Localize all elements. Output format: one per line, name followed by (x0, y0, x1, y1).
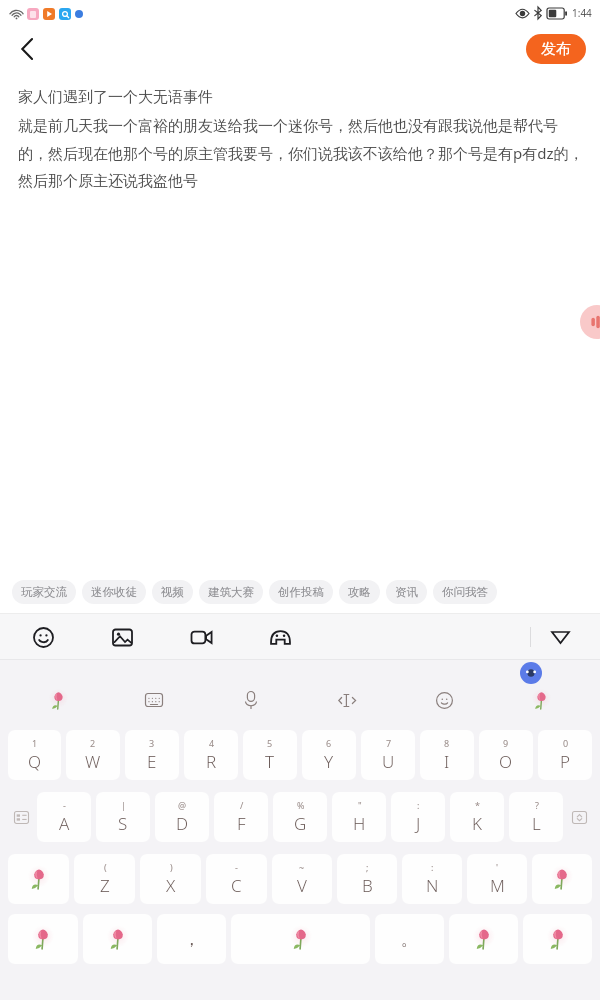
button[interactable]: 资讯 (386, 580, 427, 604)
button[interactable]: 玩家交流 (12, 580, 76, 604)
staticText: Q (28, 750, 42, 773)
button[interactable]: ' (467, 854, 527, 904)
staticText: U (382, 750, 395, 773)
button[interactable]: 。 (375, 914, 444, 964)
staticText: 攻略 (348, 585, 371, 599)
staticText: 你问我答 (442, 585, 488, 599)
staticText: I (444, 750, 450, 773)
staticText: 2 (90, 737, 96, 749)
button[interactable]: : (402, 854, 462, 904)
button[interactable]: Voice input (202, 680, 299, 720)
button[interactable]: 建筑大赛 (199, 580, 263, 604)
staticText: ) (170, 861, 173, 873)
staticText: F (237, 812, 246, 835)
staticText: ' (496, 861, 499, 873)
button[interactable]: 2 (66, 730, 120, 780)
button[interactable]: 5 (243, 730, 297, 780)
staticText: P (560, 750, 571, 773)
button[interactable]: 9 (479, 730, 533, 780)
staticText: ? (535, 799, 539, 811)
button[interactable]: Sticker key (231, 914, 370, 964)
button[interactable]: ( (74, 854, 135, 904)
staticText: X (166, 874, 176, 897)
staticText: O (499, 750, 513, 773)
staticText: 6 (326, 737, 332, 749)
staticText: E (147, 750, 157, 773)
button[interactable]: Sticker (493, 680, 590, 720)
staticText: % (297, 799, 305, 811)
staticText: ( (104, 861, 107, 873)
button[interactable]: Sticker key (8, 854, 69, 904)
button[interactable]: Back (6, 28, 48, 70)
staticText: - (235, 861, 238, 873)
staticText: 视频 (161, 585, 184, 599)
button[interactable]: Sticker (10, 680, 106, 720)
button[interactable]: Sticker key (532, 854, 592, 904)
button[interactable]: 你问我答 (433, 580, 497, 604)
button[interactable]: ; (337, 854, 397, 904)
staticText: G (294, 812, 307, 835)
button[interactable]: Collapse keyboard (540, 617, 580, 657)
button[interactable]: Video (184, 620, 218, 654)
button[interactable]: " (332, 792, 386, 842)
button[interactable]: 迷你收徒 (82, 580, 146, 604)
button[interactable]: 攻略 (339, 580, 380, 604)
button[interactable]: * (450, 792, 504, 842)
button[interactable]: 6 (302, 730, 356, 780)
button[interactable]: Sticker key (83, 914, 152, 964)
staticText: 3 (149, 737, 155, 749)
staticText: 1 (32, 737, 38, 749)
staticText: 8 (444, 737, 450, 749)
button[interactable]: Game (263, 620, 297, 654)
button[interactable]: Floating shortcut (580, 305, 600, 339)
button[interactable]: 1 (8, 730, 61, 780)
button[interactable]: | (96, 792, 150, 842)
button[interactable]: Sticker key (449, 914, 518, 964)
button[interactable]: ， (157, 914, 226, 964)
staticText: - (63, 799, 66, 811)
button[interactable]: @ (155, 792, 209, 842)
button[interactable]: Shift (568, 806, 590, 828)
button[interactable]: Image (105, 620, 139, 654)
button[interactable]: 创作投稿 (269, 580, 333, 604)
button[interactable]: - (206, 854, 267, 904)
button[interactable]: 8 (420, 730, 474, 780)
staticText: K (472, 812, 482, 835)
staticText: 7 (386, 737, 392, 749)
staticText: 9 (503, 737, 509, 749)
button[interactable]: ) (140, 854, 201, 904)
button[interactable]: - (37, 792, 91, 842)
button[interactable]: 视频 (152, 580, 193, 604)
staticText: 1:44 (572, 6, 592, 20)
button[interactable]: Sticker key (523, 914, 592, 964)
button[interactable]: ? (509, 792, 563, 842)
button[interactable]: Keyboard layout (106, 680, 202, 720)
staticText: V (297, 874, 307, 897)
button[interactable]: Symbols (10, 806, 32, 828)
staticText: 家人们遇到了一个大无语事件 (18, 88, 213, 107)
button[interactable]: Sticker key (8, 914, 78, 964)
staticText: W (85, 750, 101, 773)
button[interactable]: / (214, 792, 268, 842)
button[interactable]: Emoji (26, 620, 60, 654)
button[interactable]: : (391, 792, 445, 842)
staticText: 5 (267, 737, 273, 749)
button[interactable]: 发布 (526, 34, 586, 64)
staticText: 资讯 (395, 585, 418, 599)
staticText: C (231, 874, 242, 897)
staticText: J (416, 812, 421, 835)
button[interactable]: Avatar (520, 662, 542, 684)
button[interactable]: % (273, 792, 327, 842)
staticText: ; (366, 861, 369, 873)
staticText: R (206, 750, 217, 773)
button[interactable]: Move cursor (299, 680, 396, 720)
button[interactable]: 0 (538, 730, 592, 780)
button[interactable]: 7 (361, 730, 415, 780)
button[interactable]: Emoji (396, 680, 493, 720)
button[interactable]: 4 (184, 730, 238, 780)
staticText: 就是前几天我一个富裕的朋友送给我一个迷你号，然后他也没有跟我说他是帮代号的，然后… (18, 117, 586, 191)
button[interactable]: ~ (272, 854, 332, 904)
button[interactable]: 3 (125, 730, 179, 780)
